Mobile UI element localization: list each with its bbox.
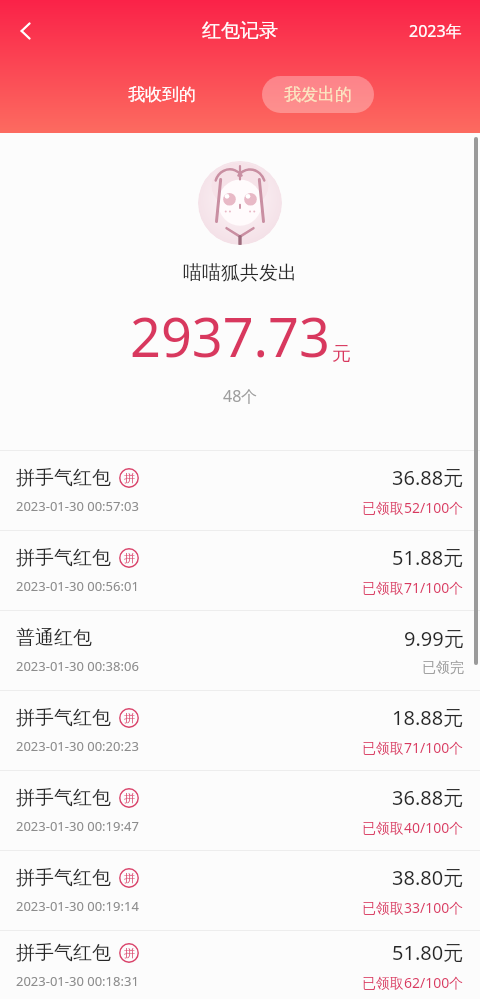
- staticText: 拼手气红包: [16, 866, 111, 890]
- button[interactable]: 拼手气红包: [0, 691, 480, 770]
- staticText: 2023年: [409, 20, 462, 42]
- staticText: 已领取62/100个: [362, 973, 464, 992]
- button[interactable]: 2023年: [401, 14, 470, 48]
- staticText: 2023-01-30 00:38:06: [16, 657, 139, 675]
- button[interactable]: 拼手气红包: [0, 531, 480, 610]
- button[interactable]: 普通红包: [0, 611, 480, 690]
- staticText: 2937.73: [130, 299, 330, 373]
- button[interactable]: 返回: [2, 7, 50, 55]
- staticText: 2023-01-30 00:20:23: [16, 737, 139, 755]
- staticText: 36.88元: [392, 784, 464, 811]
- staticText: 拼: [124, 791, 135, 805]
- staticText: 拼: [124, 871, 135, 885]
- button[interactable]: 我收到的: [106, 76, 218, 113]
- button[interactable]: 拼手气红包: [0, 931, 480, 999]
- staticText: 51.88元: [392, 544, 464, 571]
- staticText: 拼手气红包: [16, 941, 111, 965]
- button[interactable]: 拼手气红包: [0, 771, 480, 850]
- staticText: 38.80元: [392, 864, 464, 891]
- staticText: 拼手气红包: [16, 706, 111, 730]
- staticText: 18.88元: [392, 704, 464, 731]
- staticText: 已领取71/100个: [362, 578, 464, 597]
- staticText: 拼: [124, 551, 135, 565]
- staticText: 拼: [124, 471, 135, 485]
- staticText: 拼: [124, 946, 135, 960]
- staticText: 我发出的: [284, 84, 352, 105]
- staticText: 拼手气红包: [16, 786, 111, 810]
- button[interactable]: 拼手气红包: [0, 851, 480, 930]
- staticText: 36.88元: [392, 464, 464, 491]
- button[interactable]: 拼手气红包: [0, 451, 480, 530]
- staticText: 普通红包: [16, 626, 92, 650]
- staticText: 拼手气红包: [16, 546, 111, 570]
- staticText: 已领取71/100个: [362, 738, 464, 757]
- staticText: 红包记录: [202, 19, 278, 43]
- staticText: 已领完: [422, 659, 464, 677]
- staticText: 51.80元: [392, 939, 464, 966]
- staticText: 2023-01-30 00:18:31: [16, 972, 139, 990]
- staticText: 2023-01-30 00:19:14: [16, 897, 139, 915]
- staticText: 48个: [223, 385, 258, 407]
- staticText: 9.99元: [404, 625, 464, 652]
- staticText: 已领取33/100个: [362, 898, 464, 917]
- staticText: 已领取52/100个: [362, 498, 464, 517]
- button[interactable]: 我发出的: [262, 76, 374, 113]
- staticText: 拼手气红包: [16, 466, 111, 490]
- staticText: 已领取40/100个: [362, 818, 464, 837]
- staticText: 拼: [124, 711, 135, 725]
- staticText: 我收到的: [128, 84, 196, 105]
- staticText: 喵喵狐共发出: [183, 261, 297, 285]
- staticText: 2023-01-30 00:57:03: [16, 497, 139, 515]
- staticText: 2023-01-30 00:56:01: [16, 577, 139, 595]
- staticText: 2023-01-30 00:19:47: [16, 817, 139, 835]
- staticText: 元: [332, 342, 351, 366]
